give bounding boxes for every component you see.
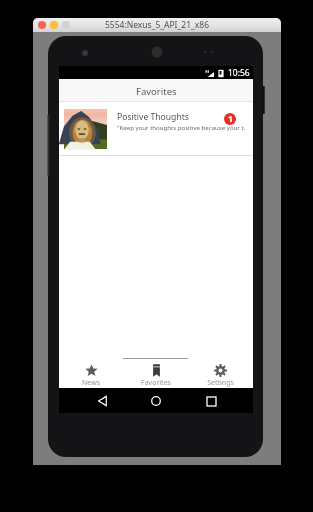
staticText: "Keep your thoughts positive because you…: [117, 123, 246, 131]
staticText: Favorites: [136, 85, 177, 98]
staticText: News: [82, 378, 100, 388]
button[interactable]: Favorites: [123, 352, 188, 388]
button[interactable]: Minimise: [50, 21, 58, 29]
button[interactable]: Recent apps: [201, 391, 221, 411]
staticText: 1: [228, 113, 233, 125]
staticText: 10:56: [228, 67, 250, 79]
button[interactable]: Settings: [188, 352, 253, 388]
button[interactable]: News: [59, 352, 123, 388]
button[interactable]: Zoom: [62, 21, 70, 29]
staticText: 5554:Nexus_5_API_21_x86: [105, 19, 209, 31]
button[interactable]: Positive Thoughts: [59, 102, 253, 156]
staticText: Positive Thoughts: [117, 111, 189, 123]
button[interactable]: Back: [92, 391, 112, 411]
button[interactable]: Close: [38, 21, 46, 29]
staticText: Favorites: [141, 378, 171, 388]
staticText: Settings: [207, 378, 234, 388]
button[interactable]: Home: [146, 391, 166, 411]
